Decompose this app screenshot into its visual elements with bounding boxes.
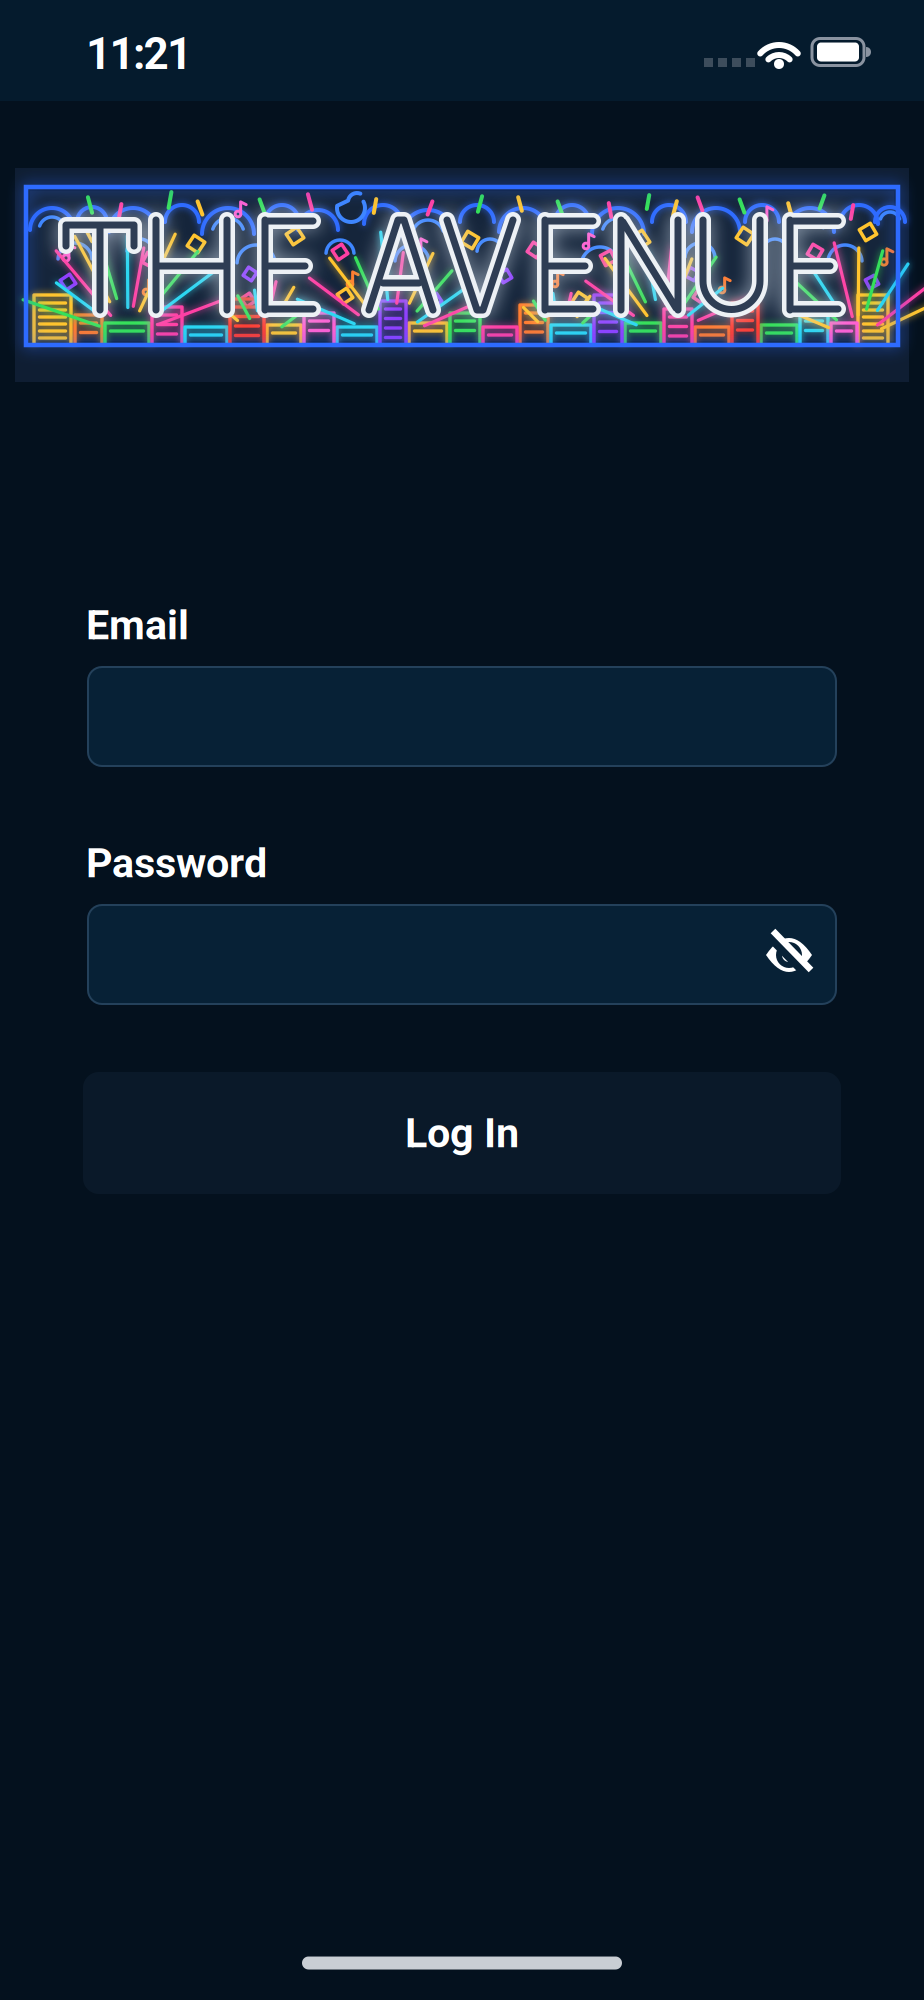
button[interactable]: Log In (83, 1072, 841, 1194)
staticText: Log In (405, 1109, 519, 1157)
button[interactable]: Email (88, 667, 836, 766)
button[interactable]: Password (88, 905, 836, 1004)
staticText: Email (86, 601, 189, 649)
staticText: 11:21 (86, 28, 192, 80)
button[interactable]: Show password (757, 922, 821, 986)
staticText: Password (86, 839, 267, 887)
